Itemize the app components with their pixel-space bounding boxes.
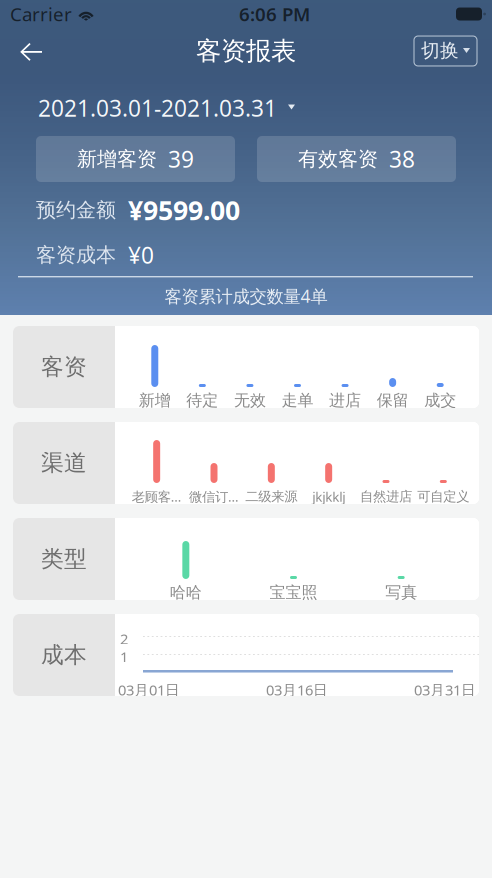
staticText: 切换 [421,39,459,62]
staticText: 2 [120,629,128,648]
staticText: 渠道 [41,449,87,477]
staticText: 类型 [41,545,87,573]
staticText: 新增客资 [77,147,157,171]
button[interactable]: 有效客资 [257,136,456,182]
staticText: 03月31日 [414,680,476,699]
staticText: 可自定义 [417,488,469,505]
staticText: 待定 [186,391,218,410]
staticText: 客资成本 [36,243,116,267]
staticText: ¥0 [128,240,154,270]
staticText: 走单 [281,391,313,410]
staticText: 无效 [234,391,266,410]
staticText: 自然进店 [360,488,412,505]
staticText: jkjkklj [312,488,345,505]
staticText: 老顾客… [132,488,182,505]
staticText: 03月01日 [118,680,180,699]
staticText: 03月16日 [266,680,328,699]
staticText: 新增 [139,391,171,410]
staticText: 成交 [424,391,456,410]
staticText: 写真 [385,583,417,602]
staticText: 客资累计成交数量4单 [164,284,327,307]
staticText: 哈哈 [170,583,202,602]
staticText: 二级来源 [245,488,297,505]
staticText: 进店 [329,391,361,410]
button[interactable]: 新增客资 [36,136,235,182]
button[interactable]: 切换 [414,36,477,66]
staticText: 6:06 PM [239,2,310,26]
staticText: ¥9599.00 [128,192,240,228]
staticText: 宝宝照 [269,583,317,602]
staticText: 38 [389,144,415,174]
staticText: 预约金额 [36,198,116,222]
staticText: 有效客资 [298,147,378,171]
staticText: 39 [168,144,194,174]
staticText: 客资 [41,353,87,381]
staticText: 客资报表 [196,35,296,66]
staticText: 1 [120,647,128,666]
button[interactable]: 2021.03.01-2021.03.31 [0,88,310,128]
staticText: 成本 [41,641,87,669]
staticText: 2021.03.01-2021.03.31 [38,93,277,123]
staticText: Carrier [10,2,72,26]
staticText: 保留 [377,391,409,410]
button[interactable]: Back [7,29,55,73]
staticText: 微信订… [189,488,239,505]
